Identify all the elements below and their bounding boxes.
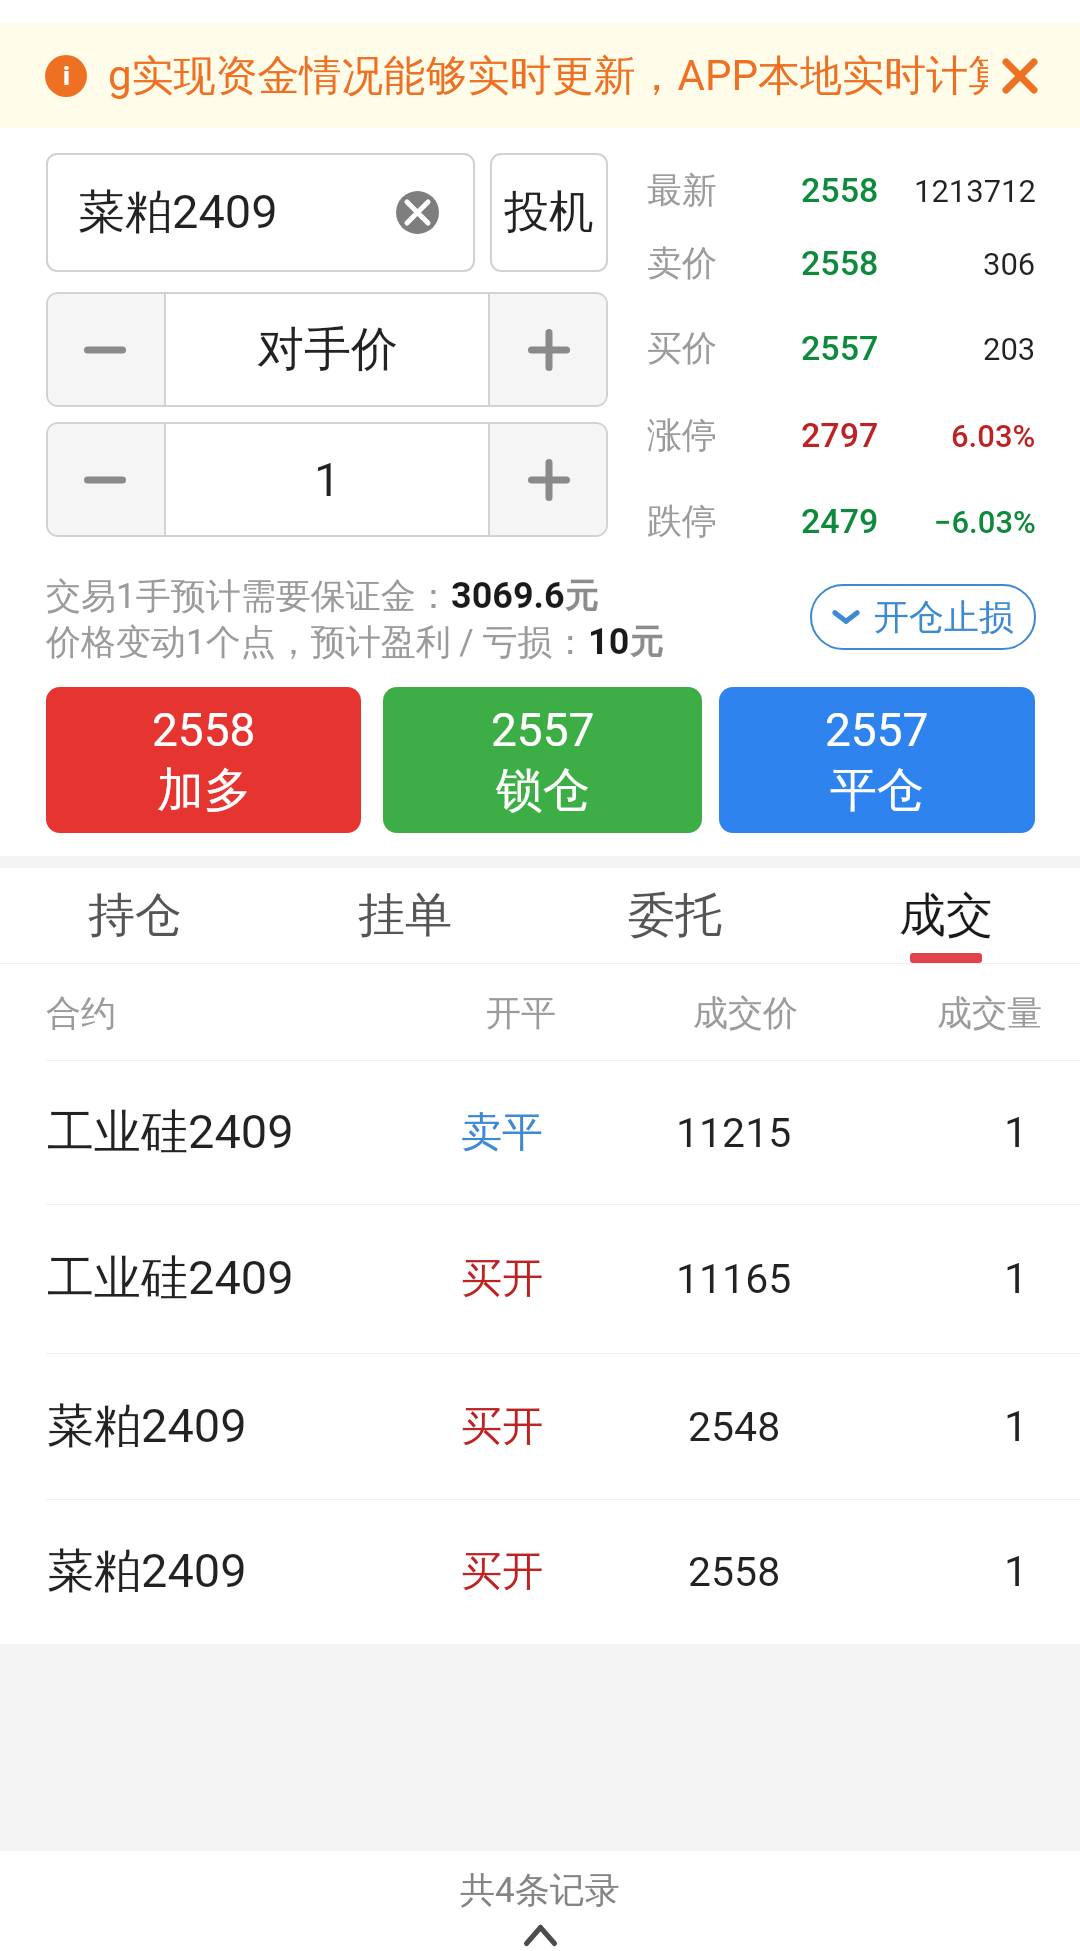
staticText: 1	[1004, 1402, 1028, 1451]
staticText: 6.03%	[951, 418, 1036, 454]
staticText: 开仓止损	[874, 595, 1014, 639]
staticText: g实现资金情况能够实时更新，APP本地实时计算	[108, 50, 988, 103]
staticText: 成交价	[693, 991, 798, 1035]
staticText: 11215	[676, 1109, 792, 1157]
staticText: 买开	[461, 1401, 543, 1453]
staticText: 10	[588, 621, 630, 663]
button[interactable]	[0, 1060, 1080, 1204]
staticText: 2558	[801, 170, 879, 210]
staticText: 203	[983, 331, 1036, 367]
staticText: 最新	[647, 168, 717, 212]
staticText: 持仓	[88, 886, 182, 945]
staticText: 工业硅2409	[47, 1103, 294, 1162]
button[interactable]: Increase	[490, 292, 608, 407]
staticText: 买开	[461, 1546, 543, 1598]
button[interactable]: Decrease	[46, 422, 164, 537]
staticText: 成交	[899, 886, 993, 945]
staticText: 2558	[688, 1548, 781, 1596]
button[interactable]	[0, 1204, 1080, 1353]
staticText: 平仓	[830, 761, 924, 820]
button[interactable]: Information	[45, 55, 87, 97]
staticText: 2557	[825, 703, 929, 757]
button[interactable]: Decrease	[46, 292, 164, 407]
staticText: 卖平	[461, 1107, 543, 1159]
staticText: 菜粕2409	[47, 1542, 247, 1601]
staticText: 2557	[491, 703, 595, 757]
button[interactable]: 1	[166, 422, 488, 537]
staticText: 挂单	[358, 886, 452, 945]
button[interactable]: 2558	[46, 687, 361, 833]
button[interactable]: 投机	[490, 153, 608, 272]
button[interactable]	[0, 1353, 1080, 1499]
staticText: 合约	[46, 991, 116, 1035]
button[interactable]: 开仓止损	[810, 584, 1036, 650]
staticText: 共4条记录	[460, 1868, 620, 1912]
staticText: 买价	[647, 326, 717, 370]
staticText: 成交量	[937, 991, 1042, 1035]
staticText: 菜粕2409	[78, 183, 278, 242]
button[interactable]: 委托	[540, 868, 810, 963]
staticText: 涨停	[647, 413, 717, 457]
staticText: 1	[314, 452, 341, 507]
staticText: 3069.6	[451, 575, 565, 617]
staticText: −6.03%	[934, 504, 1036, 540]
staticText: 1	[1004, 1108, 1028, 1157]
staticText: 交易1手预计需要保证金：	[46, 574, 451, 618]
button[interactable]	[0, 1499, 1080, 1644]
button[interactable]: Close notice	[992, 48, 1048, 104]
button[interactable]: 对手价	[166, 292, 488, 407]
staticText: 1213712	[914, 173, 1036, 209]
staticText: 2558	[801, 243, 879, 283]
staticText: 工业硅2409	[47, 1249, 294, 1308]
staticText: 跌停	[647, 499, 717, 543]
button[interactable]: 成交	[811, 868, 1080, 963]
button[interactable]: 挂单	[270, 868, 540, 963]
staticText: 加多	[157, 761, 251, 820]
staticText: 投机	[504, 184, 594, 241]
button[interactable]: Increase	[490, 422, 608, 537]
staticText: 2479	[801, 501, 879, 541]
button[interactable]: Collapse list	[0, 1851, 1080, 1951]
staticText: i	[63, 61, 70, 91]
staticText: 2557	[801, 328, 879, 368]
staticText: 1	[1004, 1547, 1028, 1596]
staticText: 元	[565, 575, 598, 617]
staticText: 买开	[461, 1253, 543, 1305]
button[interactable]: Clear contract	[396, 191, 439, 234]
button[interactable]: 持仓	[0, 868, 270, 963]
button[interactable]: 2557	[383, 687, 702, 833]
staticText: 开平	[486, 991, 556, 1035]
staticText: 委托	[628, 886, 722, 945]
staticText: 11165	[676, 1255, 792, 1303]
staticText: 卖价	[647, 241, 717, 285]
staticText: 1	[1004, 1254, 1028, 1303]
staticText: 菜粕2409	[47, 1397, 247, 1456]
staticText: 元	[630, 621, 663, 663]
button[interactable]	[46, 153, 475, 272]
button[interactable]: 2557	[719, 687, 1035, 833]
staticText: 2548	[688, 1403, 781, 1451]
staticText: 对手价	[257, 320, 398, 379]
staticText: 价格变动1个点，预计盈利 / 亏损：	[46, 620, 588, 664]
staticText: 2797	[801, 415, 879, 455]
staticText: 锁仓	[496, 761, 590, 820]
staticText: 2558	[152, 703, 256, 757]
staticText: 306	[983, 246, 1036, 282]
